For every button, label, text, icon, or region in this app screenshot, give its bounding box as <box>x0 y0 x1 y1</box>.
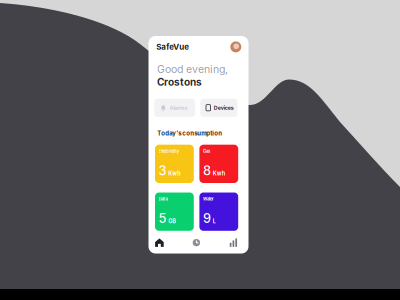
staticText: SafeVue <box>156 42 189 52</box>
staticText: Gas <box>203 149 210 154</box>
staticText: Data <box>159 196 168 201</box>
staticText: 3 <box>159 163 167 178</box>
staticText: Kwh <box>168 170 180 177</box>
staticText: Good evening, <box>157 63 228 75</box>
staticText: Crostons <box>157 76 202 88</box>
staticText: GB <box>168 218 176 225</box>
button[interactable]: Home <box>155 238 164 247</box>
staticText: Electricity <box>159 149 179 154</box>
staticText: Alarms <box>169 105 187 111</box>
button[interactable]: Alarms <box>154 99 195 117</box>
staticText: L <box>213 218 216 225</box>
staticText: 9 <box>203 211 211 226</box>
button[interactable]: Data <box>155 192 194 231</box>
button[interactable]: Electricity <box>155 145 194 183</box>
staticText: Kwh <box>213 170 225 177</box>
staticText: 5 <box>159 211 167 226</box>
button[interactable]: Water <box>199 192 238 231</box>
button[interactable]: History <box>192 238 201 247</box>
button[interactable]: Gas <box>199 145 238 183</box>
staticText: Devices <box>214 105 234 111</box>
button[interactable]: Devices <box>200 99 237 117</box>
button[interactable]: Statistics <box>229 238 238 247</box>
staticText: Today's consumption <box>157 130 222 137</box>
staticText: Water <box>203 196 214 201</box>
staticText: 8 <box>203 163 211 178</box>
